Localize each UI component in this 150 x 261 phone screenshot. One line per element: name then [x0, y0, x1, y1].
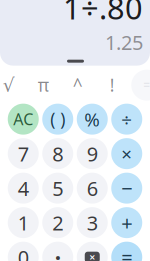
- staticText: 5: [52, 175, 63, 201]
- button[interactable]: Delete: [77, 242, 108, 261]
- button[interactable]: π: [28, 75, 59, 95]
- button[interactable]: 3: [77, 207, 108, 238]
- staticText: !: [110, 74, 115, 97]
- staticText: 6: [87, 175, 98, 201]
- staticText: =: [143, 77, 150, 93]
- staticText: 8: [52, 140, 63, 167]
- button[interactable]: 9: [77, 138, 108, 169]
- staticText: ( ): [50, 108, 65, 131]
- button[interactable]: %: [77, 104, 108, 135]
- button[interactable]: 8: [42, 138, 73, 169]
- staticText: 2: [52, 209, 63, 236]
- button[interactable]: ( ): [42, 104, 73, 135]
- staticText: ÷: [121, 107, 132, 131]
- button[interactable]: =: [111, 242, 142, 261]
- staticText: ·: [55, 242, 61, 261]
- button[interactable]: +: [111, 207, 142, 238]
- button[interactable]: 0: [8, 242, 39, 261]
- staticText: √: [3, 74, 15, 96]
- staticText: −: [121, 175, 132, 201]
- staticText: ×: [121, 141, 132, 166]
- staticText: π: [38, 74, 49, 97]
- button[interactable]: ÷: [111, 104, 142, 135]
- button[interactable]: AC: [8, 104, 39, 135]
- button[interactable]: √: [0, 75, 24, 95]
- staticText: 9: [87, 140, 98, 167]
- staticText: =: [121, 244, 132, 261]
- staticText: 7: [18, 140, 29, 167]
- staticText: 1÷.80: [63, 0, 143, 28]
- staticText: ×: [89, 250, 95, 261]
- button[interactable]: 1: [8, 207, 39, 238]
- button[interactable]: 4: [8, 173, 39, 204]
- button[interactable]: −: [111, 173, 142, 204]
- staticText: 1.25: [105, 29, 143, 56]
- button[interactable]: ×: [111, 138, 142, 169]
- button[interactable]: !: [97, 75, 128, 95]
- staticText: AC: [13, 108, 33, 130]
- button[interactable]: More functions: [131, 70, 150, 101]
- staticText: ^: [73, 74, 83, 97]
- button[interactable]: 6: [77, 173, 108, 204]
- button[interactable]: 7: [8, 138, 39, 169]
- staticText: 0: [18, 244, 29, 261]
- staticText: 1: [18, 209, 29, 236]
- button[interactable]: ^: [62, 75, 93, 95]
- staticText: %: [84, 107, 100, 131]
- button[interactable]: 5: [42, 173, 73, 204]
- staticText: 3: [87, 209, 98, 236]
- staticText: +: [121, 209, 132, 236]
- staticText: 4: [18, 175, 29, 201]
- button[interactable]: ·: [42, 242, 73, 261]
- button[interactable]: 2: [42, 207, 73, 238]
